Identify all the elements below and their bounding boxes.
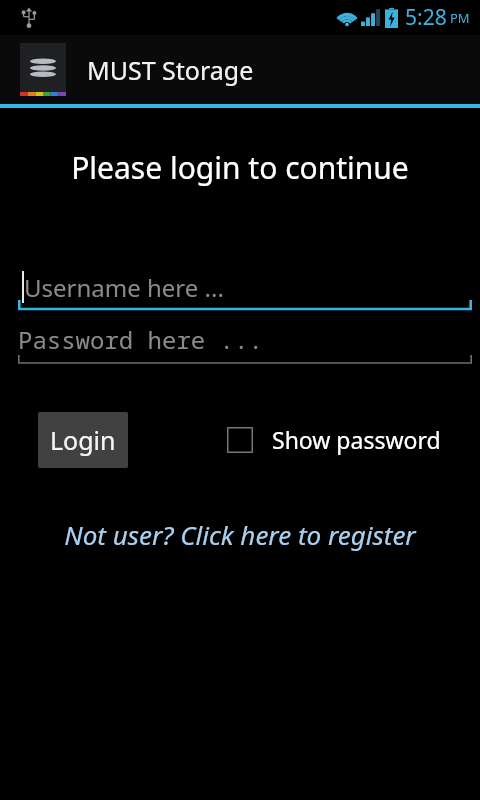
button[interactable]: Show password [227,424,441,455]
button[interactable]: Login [38,412,128,468]
staticText: Not user? Click here to register [0,517,480,552]
staticText: Username here ... [24,271,224,304]
staticText: Password here ... [18,323,263,356]
staticText: PM [450,9,470,27]
staticText: Please login to continue [0,147,480,188]
button[interactable]: Password here ... [0,319,480,366]
button[interactable]: Not user? Click here to register [0,513,480,556]
staticText: Show password [272,424,441,455]
staticText: MUST Storage [87,53,254,87]
staticText: 5:28 [405,3,447,32]
staticText: Login [50,423,116,457]
button[interactable]: Username here ... [0,268,480,313]
